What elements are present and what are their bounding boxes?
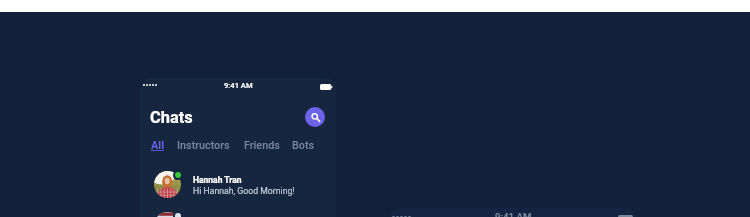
staticText: 9:41 AM <box>495 211 532 217</box>
button[interactable]: All <box>151 139 164 153</box>
button[interactable]: Friends <box>244 139 280 152</box>
button[interactable]: Instructors <box>177 139 230 152</box>
staticText: Hannah Tran <box>193 175 242 185</box>
staticText: All <box>151 139 164 152</box>
staticText: Chats <box>150 108 193 127</box>
button[interactable]: Hannah Tran <box>140 170 336 211</box>
staticText: Instructors <box>177 139 230 152</box>
staticText: Bots <box>292 139 315 152</box>
staticText: 9:41 AM <box>224 81 253 90</box>
button[interactable]: Jaxton McGregor <box>140 211 336 217</box>
staticText: Hi Hannah, Good Morning! <box>193 186 295 196</box>
button[interactable]: Bots <box>292 139 315 152</box>
button[interactable]: Search <box>305 107 325 127</box>
staticText: Friends <box>244 139 280 152</box>
